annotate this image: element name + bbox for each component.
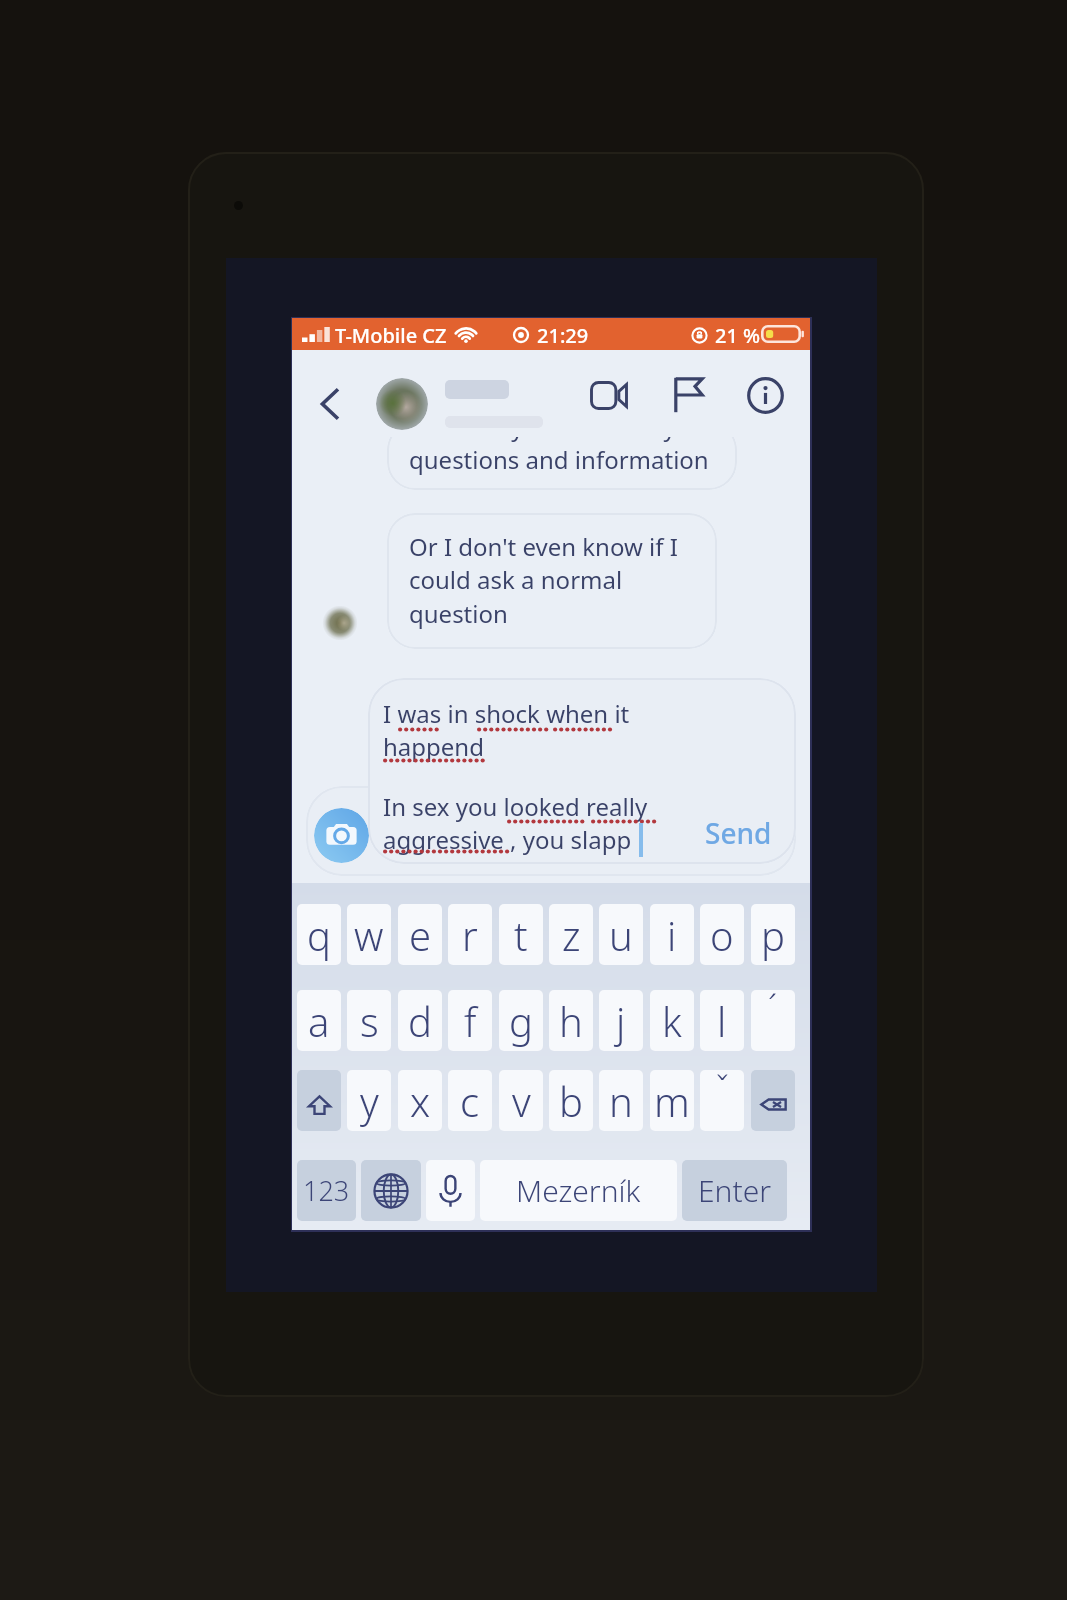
button[interactable]: Camera xyxy=(314,808,369,863)
button[interactable]: g xyxy=(499,990,543,1051)
staticText: s xyxy=(360,994,379,1048)
staticText: q xyxy=(307,908,331,962)
staticText: Or I don't even know if I could ask a no… xyxy=(409,530,678,630)
button[interactable]: Video call xyxy=(585,371,633,419)
button[interactable]: z xyxy=(549,904,593,965)
button[interactable]: d xyxy=(398,990,442,1051)
staticText: p xyxy=(761,908,785,962)
staticText: e xyxy=(409,908,432,962)
staticText: 123 xyxy=(303,1172,350,1209)
staticText: c xyxy=(460,1074,480,1128)
button[interactable]: t xyxy=(499,904,543,965)
staticText: 21 % xyxy=(715,322,761,349)
staticText: 21:29 xyxy=(537,322,589,349)
button[interactable]: Backspace xyxy=(751,1070,795,1131)
staticText: x xyxy=(410,1074,431,1128)
staticText: I am sorry for too many questions and in… xyxy=(409,437,709,476)
staticText: In sex you looked really aggressive , yo… xyxy=(383,790,648,856)
staticText: u xyxy=(609,908,633,962)
button[interactable]: Shift xyxy=(297,1070,341,1131)
button[interactable]: o xyxy=(700,904,744,965)
button[interactable]: Send xyxy=(688,808,788,858)
button[interactable]: Voice input xyxy=(426,1160,475,1221)
button[interactable]: b xyxy=(549,1070,593,1131)
staticText: r xyxy=(462,908,478,962)
button[interactable]: n xyxy=(599,1070,643,1131)
staticText: ´ xyxy=(768,990,778,1030)
staticText: m xyxy=(654,1074,690,1128)
button[interactable]: ˇ xyxy=(700,1070,744,1131)
staticText: i xyxy=(667,908,677,962)
button[interactable]: q xyxy=(297,904,341,965)
button[interactable]: c xyxy=(448,1070,492,1131)
staticText: o xyxy=(710,908,734,962)
staticText: Send xyxy=(705,814,772,852)
button[interactable]: k xyxy=(650,990,694,1051)
staticText: j xyxy=(616,994,626,1048)
button[interactable]: v xyxy=(499,1070,543,1131)
staticText: d xyxy=(408,994,432,1048)
button[interactable]: l xyxy=(700,990,744,1051)
button[interactable]: u xyxy=(599,904,643,965)
staticText: Enter xyxy=(698,1170,772,1211)
button[interactable]: Enter xyxy=(682,1160,787,1221)
button[interactable]: 123 xyxy=(297,1160,356,1221)
button[interactable]: i xyxy=(650,904,694,965)
staticText: z xyxy=(562,908,581,962)
button[interactable]: Info xyxy=(741,371,789,419)
staticText: f xyxy=(464,994,477,1048)
staticText: l xyxy=(717,994,727,1048)
staticText: t xyxy=(514,908,528,962)
button[interactable]: y xyxy=(347,1070,391,1131)
button[interactable]: a xyxy=(297,990,341,1051)
staticText: T-Mobile CZ xyxy=(335,322,447,349)
button[interactable]: s xyxy=(347,990,391,1051)
button[interactable]: j xyxy=(599,990,643,1051)
staticText: Mezerník xyxy=(516,1170,641,1211)
staticText: ˇ xyxy=(716,1070,729,1111)
staticText: h xyxy=(559,994,583,1048)
staticText: y xyxy=(360,1074,379,1128)
button[interactable]: p xyxy=(751,904,795,965)
button[interactable]: w xyxy=(347,904,391,965)
staticText: I was in shock when it happend xyxy=(383,697,630,763)
button[interactable]: ´ xyxy=(751,990,795,1051)
button[interactable]: r xyxy=(448,904,492,965)
staticText: g xyxy=(509,994,533,1048)
button[interactable]: Report xyxy=(665,371,713,419)
button[interactable]: Mezerník xyxy=(480,1160,677,1221)
staticText: a xyxy=(308,994,330,1048)
button[interactable]: h xyxy=(549,990,593,1051)
button[interactable]: m xyxy=(650,1070,694,1131)
button[interactable]: x xyxy=(398,1070,442,1131)
staticText: b xyxy=(559,1074,583,1128)
button[interactable] xyxy=(376,364,576,444)
staticText: k xyxy=(662,994,682,1048)
button[interactable]: Back xyxy=(306,370,354,438)
staticText: v xyxy=(512,1074,531,1128)
staticText: w xyxy=(354,908,384,962)
button[interactable]: f xyxy=(448,990,492,1051)
staticText: n xyxy=(609,1074,633,1128)
button[interactable]: e xyxy=(398,904,442,965)
button[interactable]: Change language xyxy=(361,1160,421,1221)
